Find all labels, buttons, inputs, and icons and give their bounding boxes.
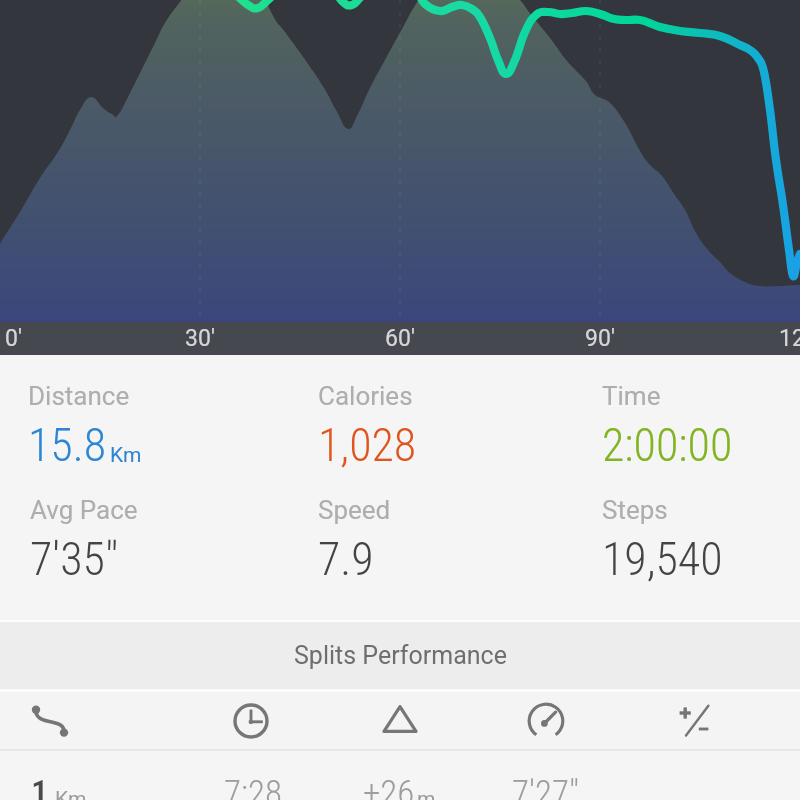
button[interactable]: Splits Performance (0, 622, 800, 689)
staticText: 2:00:00 (602, 418, 733, 472)
staticText: Time (602, 381, 661, 411)
staticText: 7:28 (224, 773, 283, 800)
button[interactable]: Split time (222, 692, 280, 749)
staticText: 7'35" (30, 532, 119, 586)
button[interactable]: Avg Pace (30, 495, 280, 579)
button[interactable]: Steps (602, 495, 800, 579)
staticText: 19,540 (602, 532, 723, 586)
staticText: 15.8 (28, 418, 107, 472)
staticText: 7.9 (318, 532, 374, 586)
staticText: Distance (28, 381, 130, 411)
button[interactable]: Speed (318, 495, 568, 579)
button[interactable]: Distance (21, 692, 79, 749)
staticText: +26 (363, 773, 415, 800)
button[interactable]: Calories (318, 381, 568, 465)
staticText: Calories (318, 381, 413, 411)
staticText: m (417, 787, 436, 800)
staticText: Km (110, 443, 142, 468)
staticText: 1,028 (318, 418, 417, 472)
staticText: 1 (31, 773, 49, 800)
button[interactable]: Time (602, 381, 800, 465)
staticText: 90' (585, 325, 615, 352)
staticText: Steps (602, 495, 668, 525)
staticText: 30' (185, 325, 215, 352)
staticText: Km (55, 787, 87, 800)
staticText: Splits Performance (294, 641, 507, 670)
button[interactable]: Average pace (517, 692, 575, 749)
staticText: 120' (779, 325, 800, 352)
button[interactable]: Elevation gain (371, 692, 429, 749)
button[interactable]: 1 (0, 751, 800, 800)
staticText: 7'27" (512, 773, 580, 800)
staticText: Speed (318, 495, 391, 525)
button[interactable]: Pace difference (665, 692, 723, 749)
staticText: 0' (5, 325, 22, 352)
staticText: 60' (385, 325, 415, 352)
staticText: Avg Pace (30, 495, 138, 525)
button[interactable]: Distance (28, 381, 278, 465)
